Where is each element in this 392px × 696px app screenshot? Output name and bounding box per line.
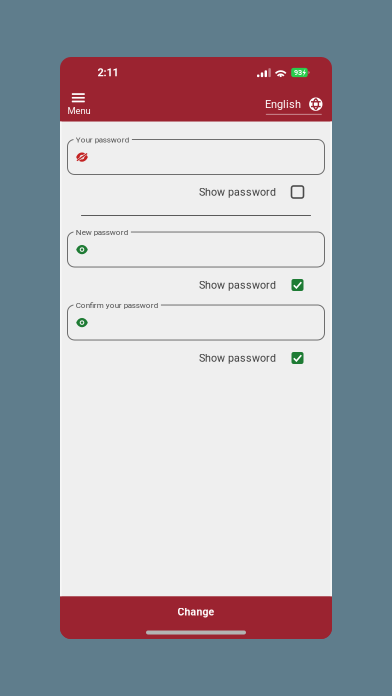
button[interactable]: Confirm your password xyxy=(67,305,324,340)
staticText: Show password xyxy=(199,279,276,291)
button[interactable]: Change xyxy=(60,596,332,627)
staticText: Show password xyxy=(199,352,276,364)
staticText: Change xyxy=(177,606,214,618)
staticText: Confirm your password xyxy=(76,300,159,310)
staticText: New password xyxy=(76,227,129,237)
staticText: 93 xyxy=(294,68,302,77)
staticText: Menu xyxy=(67,105,90,116)
staticText: English xyxy=(265,98,301,111)
button[interactable]: Your password xyxy=(67,139,324,174)
button[interactable]: Menu xyxy=(60,93,90,122)
button[interactable]: Show password xyxy=(67,277,324,293)
staticText: Your password xyxy=(76,135,130,144)
button[interactable]: New password xyxy=(67,232,324,267)
button[interactable]: Show password xyxy=(67,184,324,200)
button[interactable]: English xyxy=(265,97,332,122)
staticText: Show password xyxy=(199,186,276,198)
staticText: 2:11 xyxy=(97,66,118,79)
button[interactable]: Show password xyxy=(67,350,324,366)
